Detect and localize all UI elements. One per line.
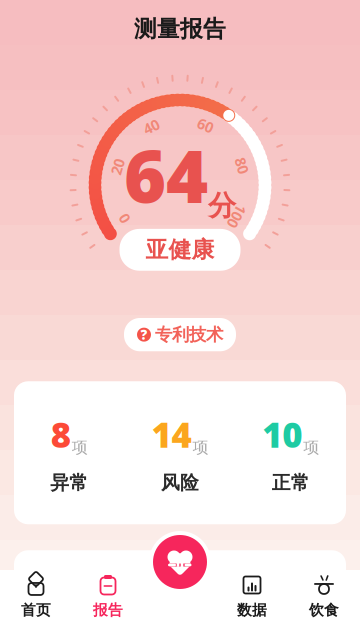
staticText: ?: [140, 326, 147, 343]
staticText: 64: [124, 127, 208, 223]
staticText: 14: [151, 411, 191, 457]
staticText: 项: [72, 438, 88, 457]
staticText: 专利技术: [155, 324, 223, 345]
staticText: 报告: [93, 601, 123, 619]
staticText: 8: [51, 411, 71, 457]
staticText: 分: [208, 188, 236, 223]
staticText: 风险: [161, 471, 199, 494]
button[interactable]: 首页: [0, 567, 72, 623]
button[interactable]: 数据: [216, 567, 288, 623]
staticText: 异常: [50, 471, 88, 494]
staticText: 数据: [237, 601, 267, 619]
staticText: 10: [262, 411, 302, 457]
staticText: 项: [303, 438, 319, 457]
staticText: 亚健康: [145, 236, 214, 264]
button[interactable]: ?: [124, 318, 236, 351]
staticText: 测量报告: [134, 15, 226, 43]
button[interactable]: 饮食: [288, 567, 360, 623]
staticText: 饮食: [309, 601, 339, 619]
button[interactable]: 开始测量: [149, 531, 211, 593]
staticText: 项: [192, 438, 208, 457]
staticText: 正常: [272, 471, 310, 494]
staticText: 首页: [21, 601, 51, 619]
button[interactable]: 报告: [72, 567, 144, 623]
